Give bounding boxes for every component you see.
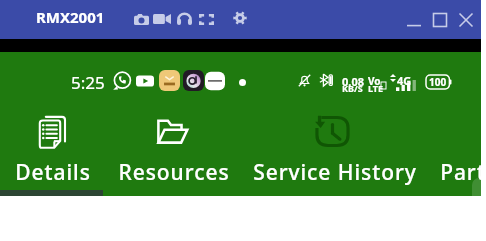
- button[interactable]: Parts: [408, 98, 486, 193]
- button[interactable]: Record: [152, 9, 172, 29]
- button[interactable]: Screenshot: [131, 9, 151, 29]
- button[interactable]: Close: [456, 10, 476, 30]
- staticText: 100: [429, 75, 447, 89]
- button[interactable]: Audio: [174, 9, 194, 29]
- button[interactable]: Fullscreen: [196, 9, 216, 29]
- button[interactable]: Details: [0, 98, 105, 193]
- staticText: Vo: [368, 74, 381, 88]
- staticText: Resources: [118, 158, 230, 187]
- staticText: LTE: [368, 82, 384, 94]
- button[interactable]: Settings: [230, 8, 250, 28]
- staticText: Service History: [253, 158, 417, 187]
- staticText: 0.08: [342, 74, 364, 89]
- button[interactable]: Service History: [242, 98, 427, 193]
- staticText: RMX2001: [36, 7, 105, 27]
- staticText: KB/S: [342, 82, 363, 94]
- button[interactable]: Minimize: [404, 10, 424, 30]
- button[interactable]: Resources: [105, 98, 242, 193]
- staticText: Details: [15, 158, 91, 187]
- button[interactable]: Maximize: [430, 10, 450, 30]
- staticText: 5:25: [71, 71, 105, 94]
- staticText: Parts: [440, 158, 486, 187]
- staticText: 4G: [397, 73, 412, 88]
